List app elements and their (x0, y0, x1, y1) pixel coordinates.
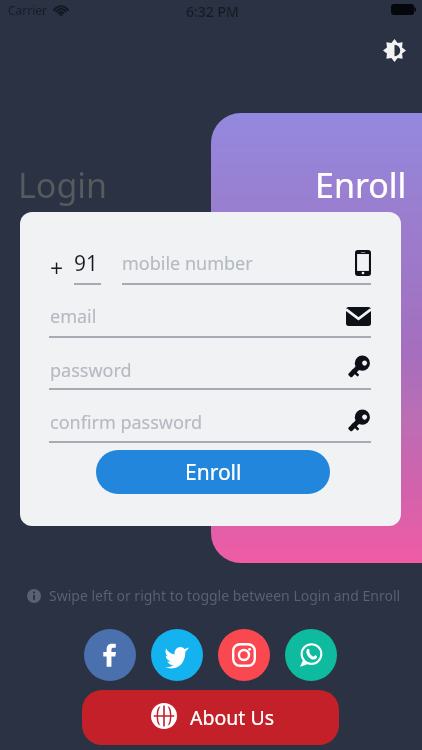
staticText: email (50, 304, 97, 329)
staticText: + (50, 252, 64, 283)
staticText: About Us (190, 704, 275, 731)
staticText: mobile number (122, 251, 253, 276)
staticText: Carrier (8, 2, 48, 18)
staticText: password (50, 358, 132, 383)
button[interactable]: Login (18, 162, 108, 208)
button[interactable]: Toggle theme (380, 36, 408, 64)
staticText: Swipe left or right to toggle between Lo… (49, 586, 401, 605)
staticText: Enroll (315, 162, 407, 208)
button[interactable]: Instagram (218, 629, 270, 681)
staticText: confirm password (50, 410, 203, 435)
staticText: 91 (74, 249, 99, 278)
button[interactable]: Enroll (96, 450, 330, 494)
button[interactable]: Twitter (151, 629, 203, 681)
staticText: 6:32 PM (186, 2, 239, 21)
staticText: Enroll (185, 458, 242, 487)
button[interactable]: About Us (82, 690, 339, 745)
button[interactable]: Enroll (315, 162, 407, 208)
staticText: Login (18, 162, 108, 208)
button[interactable]: Facebook (84, 629, 136, 681)
button[interactable]: WhatsApp (285, 629, 337, 681)
